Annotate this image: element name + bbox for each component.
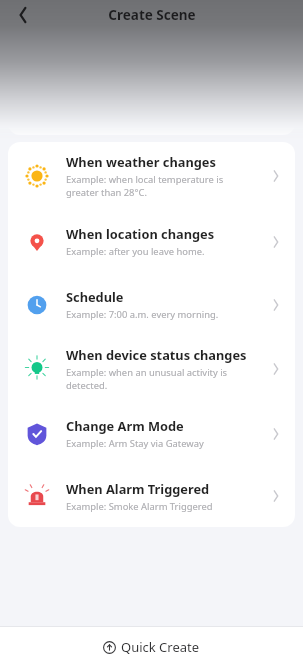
staticText: Example: when an unusual activity is det…: [66, 366, 228, 392]
button[interactable]: When Alarm Triggered: [8, 465, 295, 527]
button[interactable]: Quick Create: [0, 627, 303, 667]
button[interactable]: When weather changes: [8, 142, 295, 210]
staticText: Example: Smoke Alarm Triggered: [66, 500, 213, 513]
staticText: When location changes: [66, 225, 215, 242]
staticText: Example: turn off all lights in the bedr…: [66, 88, 253, 114]
staticText: When Alarm Triggered: [66, 480, 210, 497]
staticText: Example: when local temperature is great…: [66, 173, 224, 199]
staticText: Schedule: [66, 288, 124, 305]
staticText: Change Arm Mode: [66, 417, 184, 434]
staticText: When device status changes: [66, 346, 247, 363]
staticText: Tap-to-Run: [66, 68, 135, 85]
staticText: Example: 7:00 a.m. every morning.: [66, 308, 219, 321]
staticText: Create Scene: [108, 6, 196, 24]
staticText: Quick Create: [121, 638, 200, 656]
staticText: Example: Arm Stay via Gateway: [66, 437, 204, 450]
button[interactable]: Change Arm Mode: [8, 402, 295, 465]
button[interactable]: When device status changes: [8, 336, 295, 402]
button[interactable]: Schedule: [8, 273, 295, 336]
staticText: Example: after you leave home.: [66, 245, 205, 258]
button[interactable]: Back: [6, 0, 40, 30]
staticText: When weather changes: [66, 153, 216, 170]
button[interactable]: When location changes: [8, 210, 295, 273]
